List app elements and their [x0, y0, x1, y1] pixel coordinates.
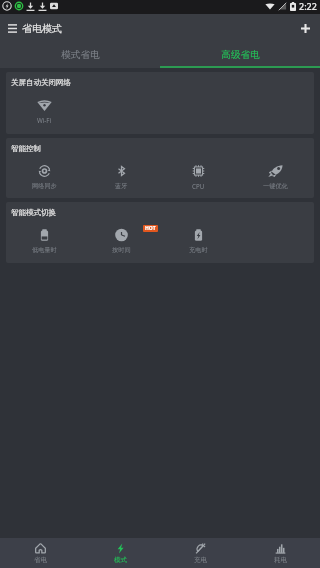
button[interactable]: 充电时 — [160, 229, 237, 254]
button[interactable]: CPU — [160, 165, 237, 190]
button[interactable]: 按时间 — [83, 229, 160, 254]
staticText: Wi-Fi — [37, 116, 52, 124]
button[interactable]: 模式省电 — [0, 42, 160, 68]
staticText: 充电时 — [189, 246, 208, 254]
button[interactable]: Menu — [2, 18, 22, 38]
staticText: 耗电 — [274, 556, 287, 564]
button[interactable]: 一键优化 — [237, 165, 314, 190]
staticText: 关屏自动关闭网络 — [11, 78, 71, 87]
staticText: 一键优化 — [263, 182, 288, 190]
staticText: 低电量时 — [32, 246, 57, 254]
button[interactable]: Wi-Fi — [6, 99, 82, 124]
staticText: HOT — [145, 225, 156, 232]
button[interactable]: 充电 — [160, 538, 240, 568]
button[interactable]: 低电量时 — [6, 229, 83, 254]
staticText: CPU — [192, 182, 205, 190]
staticText: 省电 — [34, 556, 47, 564]
button[interactable]: 耗电 — [240, 538, 320, 568]
staticText: 模式省电 — [61, 49, 100, 61]
staticText: 智能控制 — [11, 144, 41, 153]
button[interactable]: 模式 — [80, 538, 160, 568]
staticText: 充电 — [194, 556, 207, 564]
button[interactable]: Add — [295, 18, 315, 38]
staticText: 按时间 — [112, 246, 131, 254]
staticText: 网络同步 — [32, 182, 57, 190]
button[interactable]: 高级省电 — [160, 42, 320, 68]
button[interactable]: 省电 — [0, 538, 80, 568]
staticText: 模式 — [114, 556, 127, 564]
staticText: 智能模式切换 — [11, 208, 56, 217]
staticText: 蓝牙 — [115, 182, 128, 190]
button[interactable]: 蓝牙 — [83, 165, 160, 190]
staticText: 高级省电 — [221, 49, 260, 61]
staticText: 省电模式 — [22, 22, 62, 35]
button[interactable]: 网络同步 — [6, 165, 83, 190]
staticText: 2:22 — [299, 0, 317, 12]
